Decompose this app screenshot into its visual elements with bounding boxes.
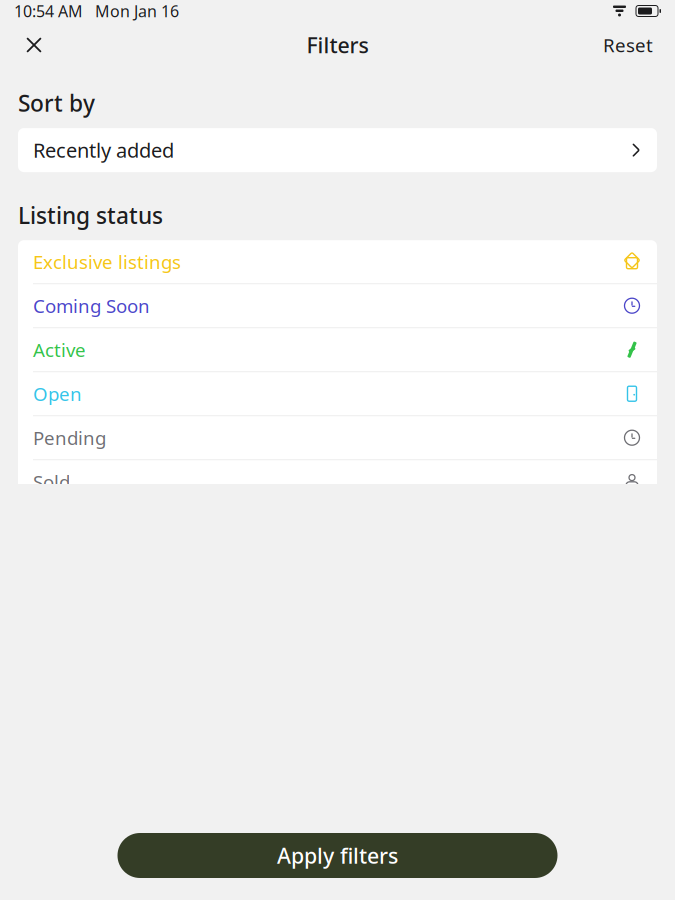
staticText: Listing status — [18, 200, 163, 230]
staticText: 10:54 AM — [14, 0, 83, 22]
button[interactable]: Enter manually — [533, 814, 657, 837]
staticText: Exclusive listings — [33, 249, 181, 274]
button[interactable]: Active — [18, 328, 657, 371]
button[interactable]: Exclusive listings — [18, 240, 657, 283]
staticText: Square footage — [18, 810, 184, 840]
button[interactable]: Coming Soon — [18, 284, 657, 327]
staticText: Sold — [33, 469, 70, 494]
staticText: Pending — [33, 425, 106, 450]
button[interactable]: Apply filters — [117, 833, 557, 878]
button[interactable]: Sold — [18, 460, 657, 503]
staticText: Apply filters — [277, 841, 398, 870]
button[interactable]: Reset — [593, 23, 663, 67]
button[interactable]: Recently added — [18, 128, 657, 172]
staticText: Sort by — [18, 88, 95, 118]
staticText: Active — [33, 337, 86, 362]
staticText: Coming Soon — [33, 293, 150, 318]
staticText: Mon Jan 16 — [95, 0, 179, 22]
staticText: Open — [33, 381, 82, 406]
button[interactable]: Close — [12, 23, 56, 67]
button[interactable]: Open — [18, 372, 657, 415]
staticText: Filters — [306, 31, 368, 59]
staticText: Reset — [603, 33, 653, 57]
button[interactable]: Pending — [18, 416, 657, 459]
staticText: Recently added — [33, 137, 174, 163]
staticText: Enter manually — [533, 814, 657, 837]
